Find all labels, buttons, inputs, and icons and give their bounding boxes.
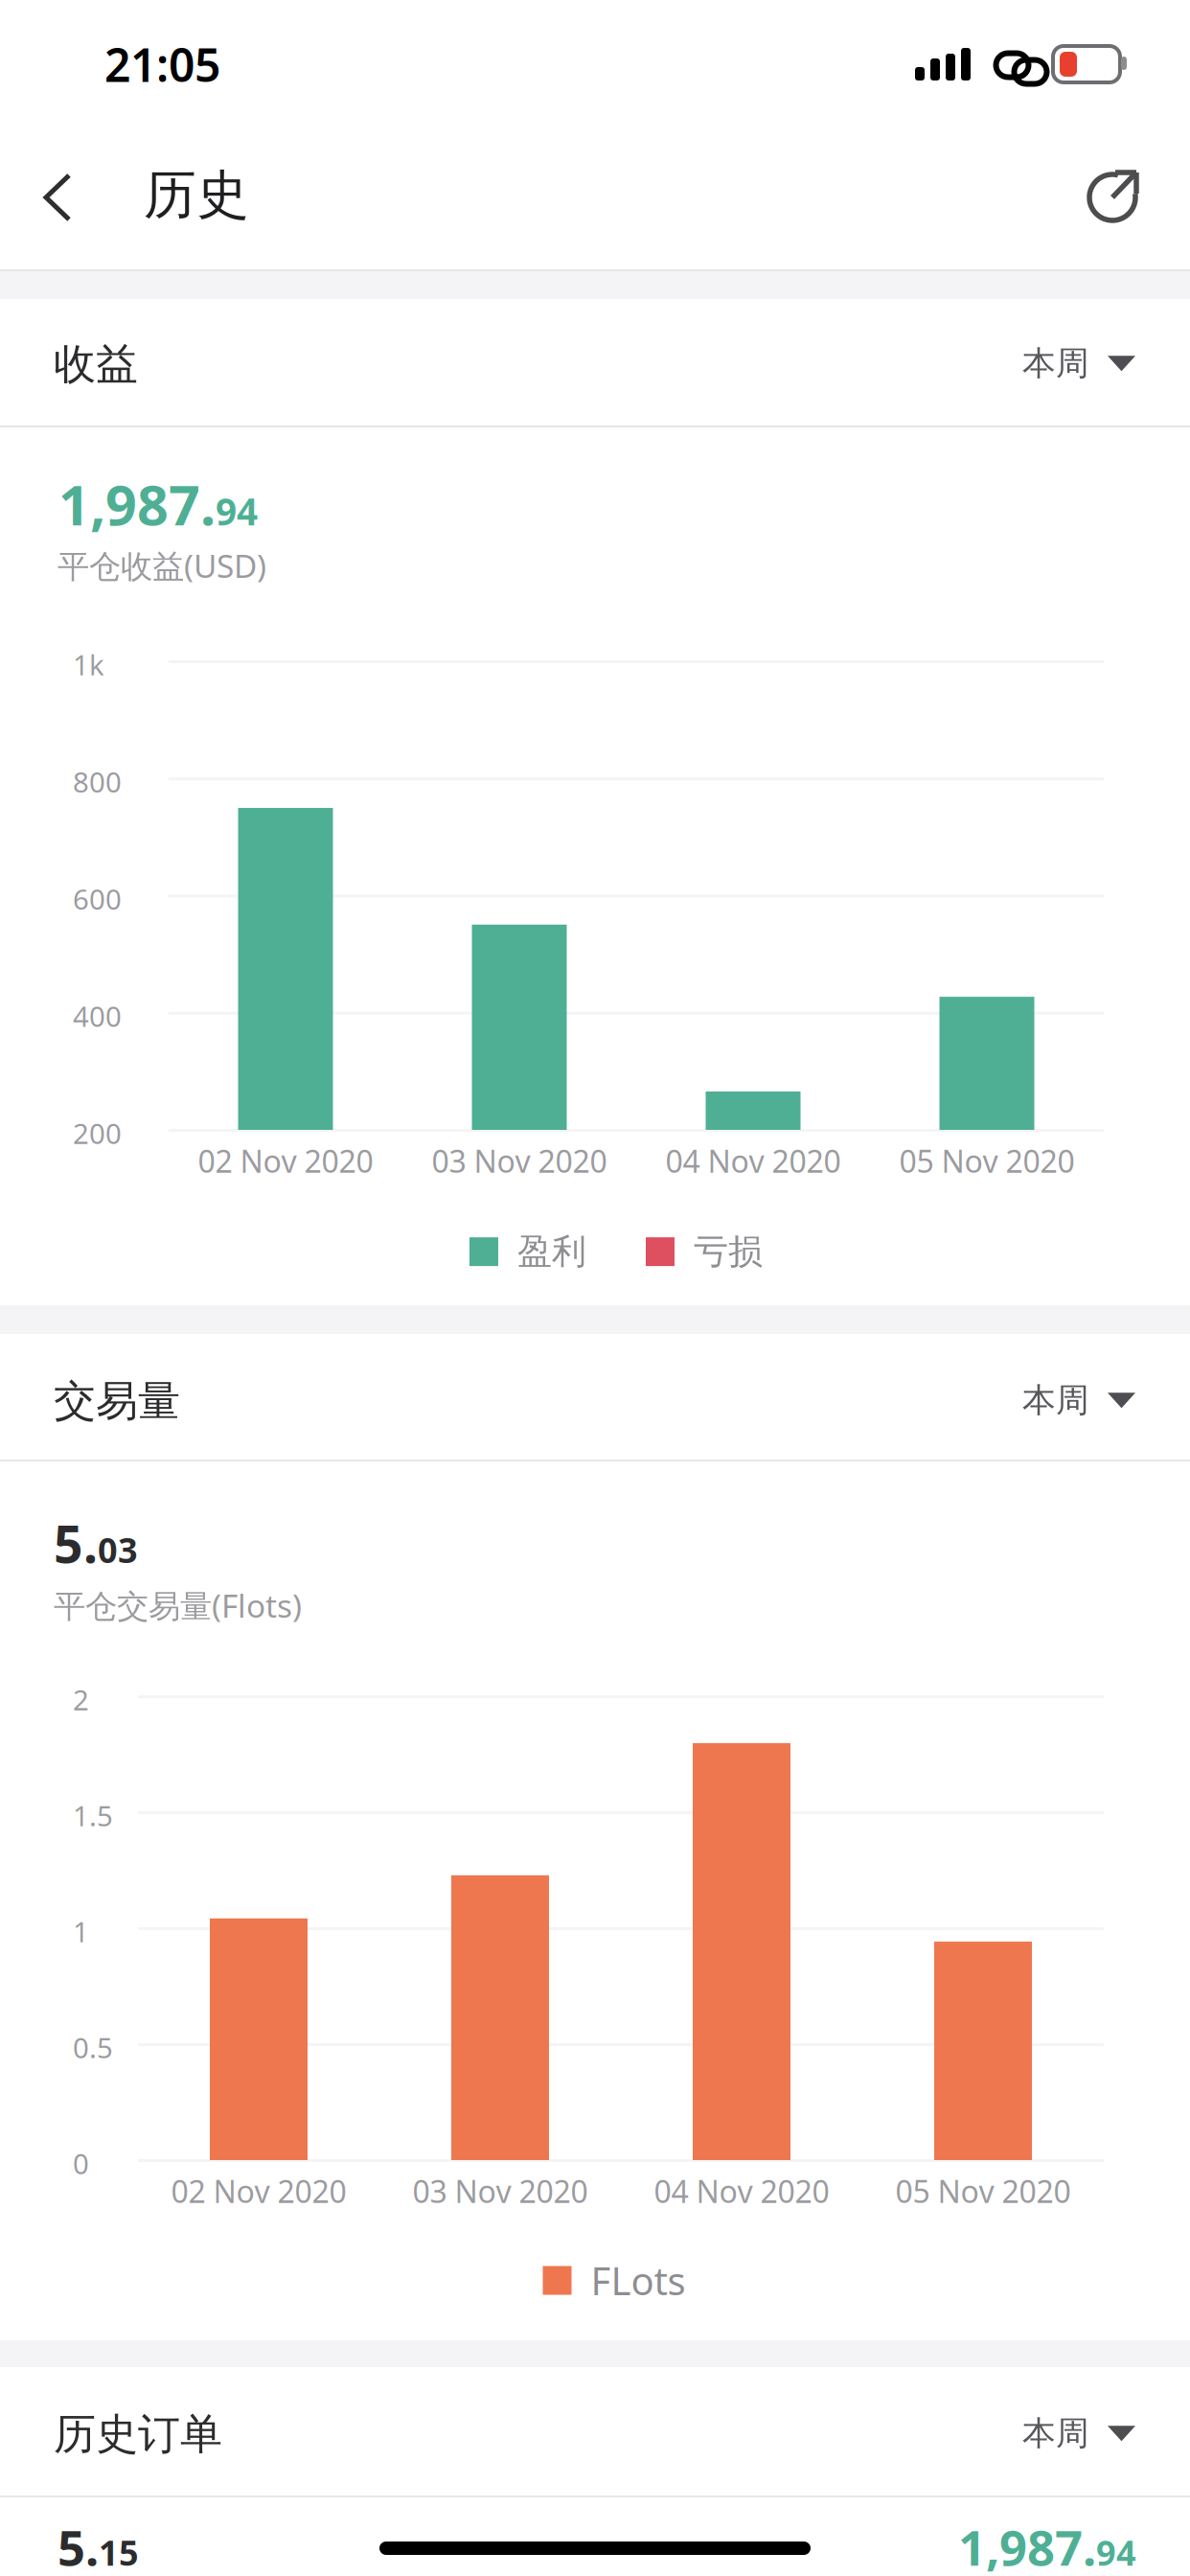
staticText: 5. xyxy=(54,1509,98,1577)
staticText: 800 xyxy=(73,763,122,800)
staticText: 亏损 xyxy=(694,1230,763,1273)
staticText: 2 xyxy=(73,1681,89,1718)
button[interactable]: 本周 xyxy=(1007,2394,1151,2473)
staticText: 15 xyxy=(99,2529,139,2575)
staticText: 历史 xyxy=(144,163,249,227)
staticText: 200 xyxy=(73,1115,122,1152)
staticText: 平仓收益(USD) xyxy=(57,544,266,587)
staticText: 0 xyxy=(73,2145,89,2182)
staticText: 1.5 xyxy=(73,1797,113,1834)
staticText: 盈利 xyxy=(517,1230,586,1273)
button[interactable]: Share xyxy=(1059,140,1170,251)
staticText: 历史订单 xyxy=(54,2408,222,2460)
staticText: 1,987. xyxy=(58,468,216,541)
staticText: 94 xyxy=(1096,2529,1136,2575)
staticText: 收益 xyxy=(54,338,138,390)
staticText: 本周 xyxy=(1022,2413,1089,2454)
staticText: 1,987. xyxy=(958,2515,1096,2576)
staticText: 本周 xyxy=(1022,343,1089,384)
staticText: FLots xyxy=(591,2255,686,2306)
staticText: 400 xyxy=(73,997,122,1035)
button[interactable]: 本周 xyxy=(1007,324,1151,403)
staticText: 本周 xyxy=(1022,1380,1089,1421)
staticText: 04 Nov 2020 xyxy=(665,1140,841,1181)
staticText: 02 Nov 2020 xyxy=(171,2171,346,2211)
staticText: 94 xyxy=(216,486,258,536)
staticText: 5. xyxy=(57,2515,99,2576)
staticText: 1k xyxy=(73,646,104,683)
staticText: 03 Nov 2020 xyxy=(412,2171,588,2211)
staticText: 02 Nov 2020 xyxy=(198,1140,373,1181)
staticText: 05 Nov 2020 xyxy=(899,1140,1075,1181)
button[interactable]: Back xyxy=(6,142,109,253)
button[interactable]: 本周 xyxy=(1007,1361,1151,1440)
staticText: 21:05 xyxy=(104,34,220,95)
staticText: 0.5 xyxy=(73,2029,113,2066)
staticText: 04 Nov 2020 xyxy=(654,2171,829,2211)
staticText: 03 xyxy=(98,1527,138,1573)
staticText: 平仓交易量(Flots) xyxy=(54,1584,302,1627)
staticText: 交易量 xyxy=(54,1375,180,1427)
staticText: 05 Nov 2020 xyxy=(895,2171,1071,2211)
staticText: 600 xyxy=(73,880,122,918)
staticText: 1 xyxy=(73,1913,89,1950)
staticText: 03 Nov 2020 xyxy=(432,1140,607,1181)
